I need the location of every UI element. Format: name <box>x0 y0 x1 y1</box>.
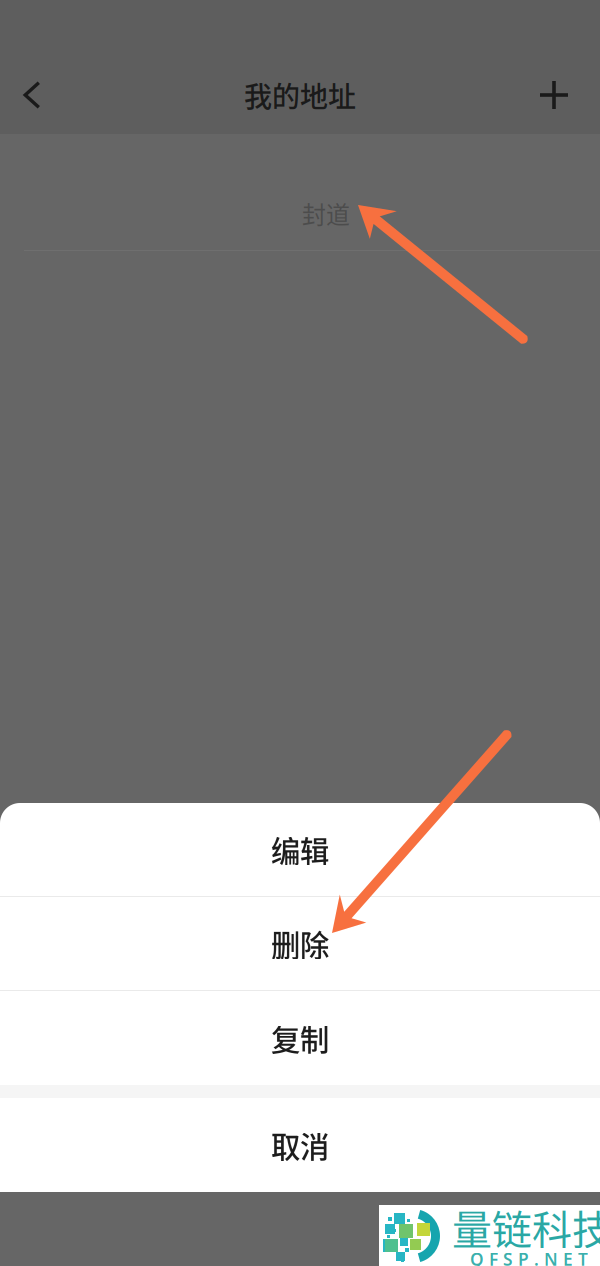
staticText: 我的地址 <box>244 75 356 115</box>
staticText: 复制 <box>271 1017 329 1059</box>
button[interactable]: Add address <box>508 59 600 131</box>
staticText: 删除 <box>271 922 329 965</box>
staticText: 编辑 <box>271 828 329 871</box>
staticText: 封道 <box>302 196 350 230</box>
staticText: 取消 <box>271 1124 329 1166</box>
staticText: 量链科技 <box>452 1198 600 1256</box>
button[interactable]: Back <box>0 59 64 131</box>
button[interactable]: 删除 <box>0 897 600 990</box>
button[interactable]: 编辑 <box>0 803 600 896</box>
staticText: Q F S P . N E T <box>470 1247 588 1266</box>
button[interactable]: 复制 <box>0 991 600 1085</box>
button[interactable]: 取消 <box>0 1098 600 1192</box>
